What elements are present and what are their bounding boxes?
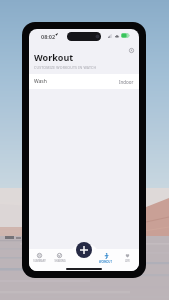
staticText: 08:02 — [41, 33, 56, 40]
staticText: LIFE — [125, 259, 130, 262]
staticText: SHARING — [54, 259, 66, 262]
staticText: Indoor — [119, 79, 134, 85]
button[interactable]: Add workout — [76, 242, 92, 258]
staticText: Wash — [34, 78, 47, 85]
staticText: CUSTOMIZE WORKOUTS IN WATCH — [34, 65, 97, 70]
button[interactable]: SHARING — [51, 253, 68, 262]
staticText: WORKOUT — [99, 260, 112, 263]
button[interactable]: LIFE — [119, 253, 136, 262]
button[interactable]: WORKOUT — [97, 253, 114, 263]
button[interactable]: Profile — [127, 46, 135, 54]
staticText: Workout — [34, 51, 74, 63]
staticText: SUMMARY — [33, 259, 46, 262]
button[interactable]: SUMMARY — [31, 253, 48, 262]
button[interactable]: Wash — [29, 74, 139, 89]
